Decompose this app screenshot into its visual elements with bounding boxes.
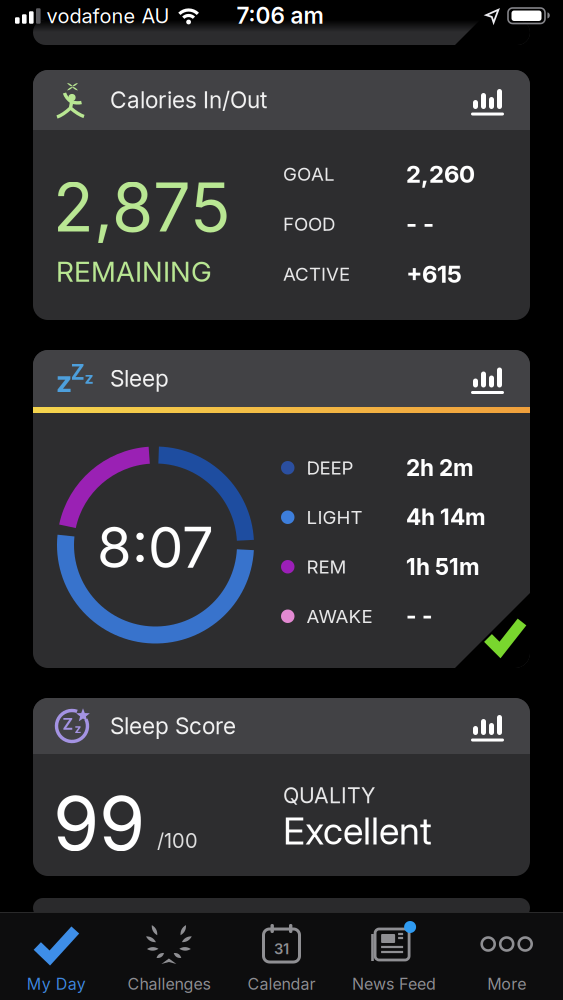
button[interactable]: Calories In/Out — [33, 70, 530, 320]
staticText: vodafone AU — [47, 4, 170, 28]
staticText: REMAINING — [56, 255, 212, 288]
staticText: 4h 14m — [406, 504, 486, 531]
button[interactable]: Challenges — [113, 912, 225, 1000]
staticText: Challenges — [127, 975, 210, 993]
staticText: Sleep — [110, 365, 169, 392]
staticText: - - — [406, 210, 434, 238]
button[interactable]: More — [450, 912, 563, 1000]
staticText: z — [56, 364, 72, 399]
staticText: More — [487, 975, 526, 993]
staticText: Z — [62, 715, 73, 733]
button[interactable]: z — [33, 350, 530, 668]
staticText: 2,875 — [53, 168, 231, 247]
staticText: 2h 2m — [406, 454, 474, 481]
staticText: 31 — [274, 940, 289, 958]
staticText: News Feed — [352, 975, 436, 993]
staticText: Excellent — [283, 809, 432, 853]
staticText: My Day — [27, 975, 86, 993]
staticText: REM — [306, 556, 346, 578]
staticText: +615 — [406, 260, 462, 288]
staticText: FOOD — [283, 213, 335, 235]
staticText: GOAL — [283, 163, 335, 185]
button[interactable]: News Feed — [338, 912, 450, 1000]
staticText: Z — [70, 359, 84, 385]
staticText: /100 — [157, 829, 198, 853]
button[interactable]: My Day — [0, 912, 113, 1000]
staticText: DEEP — [306, 457, 353, 479]
staticText: 99 — [53, 779, 145, 867]
staticText: Sleep Score — [110, 713, 236, 739]
staticText: QUALITY — [283, 783, 375, 808]
staticText: Calendar — [247, 975, 315, 993]
staticText: 7:06 am — [236, 2, 323, 29]
staticText: LIGHT — [306, 506, 362, 528]
button[interactable]: Z — [33, 698, 530, 876]
staticText: z — [74, 722, 81, 736]
button[interactable]: 31 — [225, 912, 338, 1000]
staticText: - - — [406, 603, 433, 630]
staticText: AWAKE — [306, 605, 372, 627]
staticText: Calories In/Out — [110, 87, 267, 113]
staticText: z — [84, 369, 93, 387]
staticText: ACTIVE — [283, 263, 350, 285]
staticText: 2,260 — [406, 160, 475, 188]
staticText: 8:07 — [97, 514, 214, 581]
staticText: 1h 51m — [406, 553, 480, 580]
